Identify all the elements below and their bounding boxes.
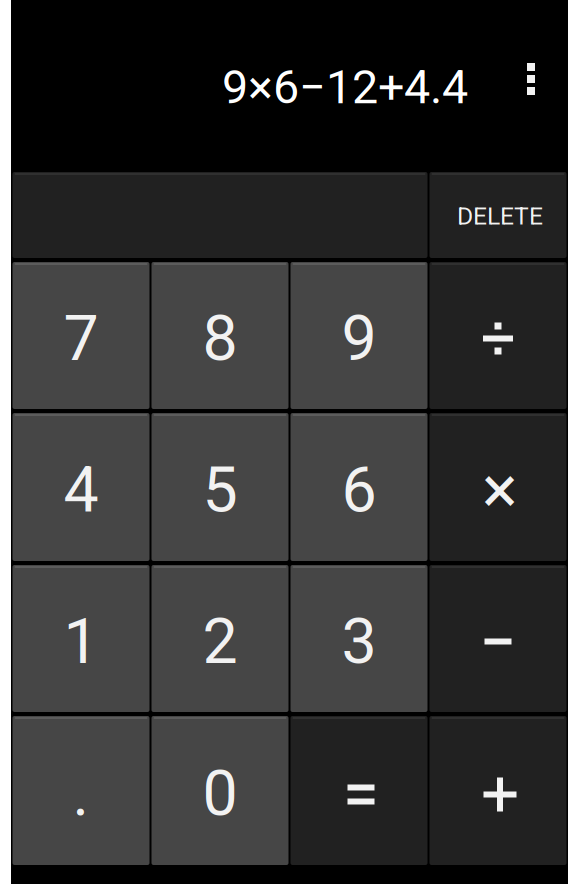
- staticText: 3: [341, 605, 376, 678]
- staticText: 0: [202, 757, 237, 830]
- button[interactable]: 8: [151, 262, 288, 409]
- staticText: 1: [63, 605, 98, 678]
- button[interactable]: 1: [12, 565, 149, 712]
- button[interactable]: 4: [12, 413, 149, 561]
- staticText: 5: [202, 453, 237, 527]
- button[interactable]: 7: [12, 262, 149, 409]
- button[interactable]: 9: [290, 262, 427, 409]
- staticText: ×: [482, 451, 518, 529]
- button[interactable]: ×: [429, 413, 566, 561]
- button[interactable]: Plus: [429, 716, 566, 865]
- button[interactable]: Equals: [290, 716, 427, 865]
- button[interactable]: 5: [151, 413, 288, 561]
- staticText: 4: [63, 453, 98, 527]
- button[interactable]: Minus: [429, 565, 566, 712]
- button[interactable]: More options: [509, 57, 553, 101]
- button[interactable]: 6: [290, 413, 427, 561]
- staticText: 6: [341, 453, 376, 527]
- staticText: 7: [63, 302, 98, 375]
- button[interactable]: DELETE: [429, 172, 566, 258]
- button[interactable]: 2: [151, 565, 288, 712]
- staticText: 8: [202, 302, 237, 375]
- staticText: DELETE: [457, 201, 543, 230]
- staticText: 9×6−12+4.4: [222, 60, 468, 115]
- button[interactable]: .: [12, 716, 149, 865]
- staticText: 9: [341, 302, 376, 375]
- button[interactable]: 3: [290, 565, 427, 712]
- button[interactable]: Divide: [429, 262, 566, 409]
- staticText: .: [72, 757, 89, 830]
- staticText: 2: [202, 605, 237, 678]
- button[interactable]: 0: [151, 716, 288, 865]
